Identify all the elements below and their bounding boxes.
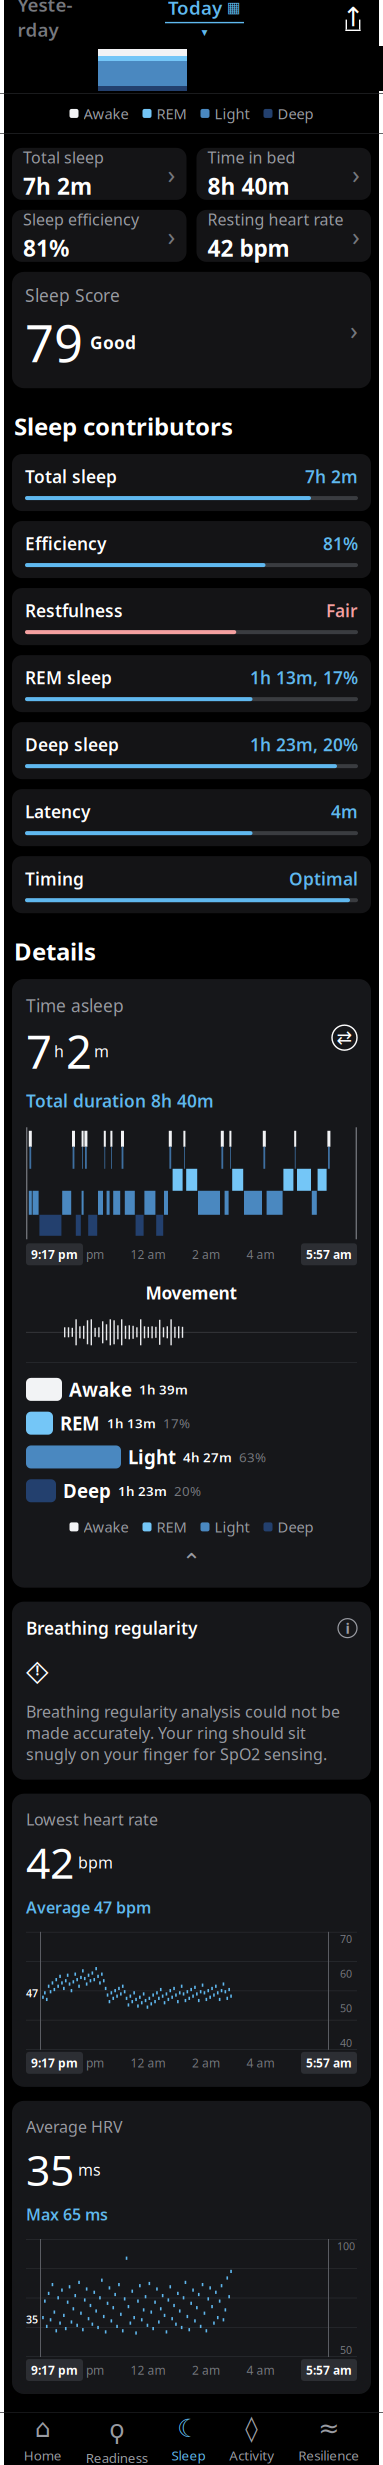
staticText: i	[345, 1618, 349, 1638]
staticText: 2 am	[192, 1246, 220, 1262]
staticText: REM	[156, 1517, 186, 1537]
staticText: Yesterday	[17, 0, 72, 42]
staticText: 7h 2m	[23, 171, 92, 201]
staticText: Fair	[326, 599, 358, 622]
button[interactable]: Share	[333, 0, 373, 34]
staticText: ›	[167, 157, 175, 191]
button[interactable]: REM sleep	[12, 655, 371, 712]
staticText: 70	[340, 1932, 352, 1946]
staticText: 4 am	[246, 1246, 274, 1262]
staticText: Latency	[25, 800, 90, 823]
staticText: Deep	[277, 1517, 313, 1537]
staticText: ≈	[318, 2414, 339, 2443]
staticText: Time in bed	[207, 147, 295, 168]
staticText: 9:17 pm	[31, 1246, 78, 1262]
button[interactable]: Resting heart rate	[196, 210, 371, 262]
staticText: 100	[337, 2239, 355, 2253]
button[interactable]: Timing	[12, 856, 371, 913]
staticText: 7	[26, 1021, 52, 1081]
staticText: Lowest heart rate	[26, 1809, 158, 1830]
staticText: 4 am	[246, 2362, 274, 2378]
staticText: ›	[352, 219, 360, 253]
staticText: ◊	[245, 2414, 258, 2443]
staticText: bpm	[78, 1852, 113, 1873]
staticText: 81%	[23, 233, 69, 263]
staticText: 7h 2m	[305, 465, 358, 488]
staticText: 5:57 am	[306, 2055, 352, 2071]
staticText: 4h 27m	[183, 1448, 232, 1466]
button[interactable]: ◊	[229, 2416, 274, 2462]
button[interactable]: ☾	[171, 2416, 205, 2462]
staticText: Max 65 ms	[26, 2204, 108, 2225]
staticText: m	[94, 1040, 109, 1062]
staticText: Breathing regularity analysis could not …	[26, 1701, 340, 1765]
staticText: 1h 23m	[118, 1482, 167, 1500]
staticText: 50	[340, 2001, 352, 2015]
staticText: Light	[128, 1445, 176, 1469]
staticText: 20%	[174, 1482, 201, 1500]
staticText: Average 47 bpm	[26, 1897, 151, 1918]
staticText: Awake	[83, 104, 128, 123]
staticText: pm	[83, 2055, 104, 2071]
staticText: Average HRV	[26, 2116, 123, 2137]
button[interactable]: ⌂	[24, 2416, 62, 2462]
staticText: 12 am	[130, 2055, 165, 2071]
button[interactable]: Yesterday	[14, 2, 76, 32]
staticText: ◇	[26, 1654, 49, 1687]
staticText: Sleep efficiency	[23, 209, 139, 230]
staticText: ⌂	[35, 2414, 51, 2443]
staticText: 1h 23m, 20%	[250, 733, 358, 756]
staticText: pm	[83, 1246, 104, 1262]
button[interactable]: Total sleep	[12, 454, 371, 511]
staticText: 1h 13m	[107, 1414, 156, 1432]
staticText: Sleep contributors	[14, 410, 233, 442]
staticText: 12 am	[130, 1246, 165, 1262]
staticText: Deep	[277, 104, 313, 123]
staticText: 63%	[239, 1448, 266, 1466]
staticText: h	[54, 1040, 64, 1062]
staticText: Movement	[145, 1281, 237, 1304]
staticText: 35	[26, 2312, 38, 2326]
staticText: 9:17 pm	[31, 2055, 78, 2071]
staticText: Resting heart rate	[207, 209, 343, 230]
staticText: 79	[25, 309, 83, 376]
staticText: 17%	[163, 1414, 190, 1432]
staticText: !	[35, 1661, 39, 1679]
staticText: ▦	[227, 0, 241, 16]
staticText: ›	[350, 313, 358, 347]
staticText: 5:57 am	[306, 2362, 352, 2378]
button[interactable]: Today	[165, 0, 244, 39]
staticText: ›	[352, 157, 360, 191]
button[interactable]: Collapse details	[166, 1551, 216, 1573]
staticText: Timing	[25, 867, 84, 890]
staticText: Light	[214, 1517, 249, 1537]
staticText: 4m	[331, 800, 358, 823]
staticText: 35	[26, 2141, 74, 2198]
button[interactable]: Sleep efficiency	[12, 210, 186, 262]
staticText: 4 am	[246, 2055, 274, 2071]
button[interactable]: Total sleep	[12, 148, 186, 200]
staticText: Efficiency	[25, 532, 106, 555]
button[interactable]: ≈	[298, 2416, 359, 2462]
staticText: Resilience	[298, 2446, 359, 2464]
button[interactable]: ϙ	[86, 2416, 148, 2462]
staticText: REM	[156, 104, 186, 123]
button[interactable]: Time in bed	[196, 148, 371, 200]
button[interactable]: Adjust sleep stages	[332, 1025, 357, 1050]
staticText: 42	[26, 1834, 74, 1891]
staticText: ↑	[342, 2, 364, 32]
staticText: Total sleep	[23, 147, 104, 168]
staticText: 9:17 pm	[31, 2362, 78, 2378]
staticText: Sleep Score	[25, 284, 120, 307]
button[interactable]: Deep sleep	[12, 722, 371, 779]
staticText: ☾	[177, 2414, 200, 2443]
button[interactable]: Information about breathing regularity	[338, 1619, 357, 1638]
staticText: 2 am	[192, 2055, 220, 2071]
staticText: 5:57 am	[306, 1246, 352, 1262]
button[interactable]: Efficiency	[12, 521, 371, 578]
button[interactable]: Restfulness	[12, 588, 371, 645]
button[interactable]: Latency	[12, 789, 371, 846]
staticText: 42 bpm	[207, 233, 289, 263]
staticText: ›	[167, 219, 175, 253]
button[interactable]: Sleep Score	[12, 272, 371, 388]
